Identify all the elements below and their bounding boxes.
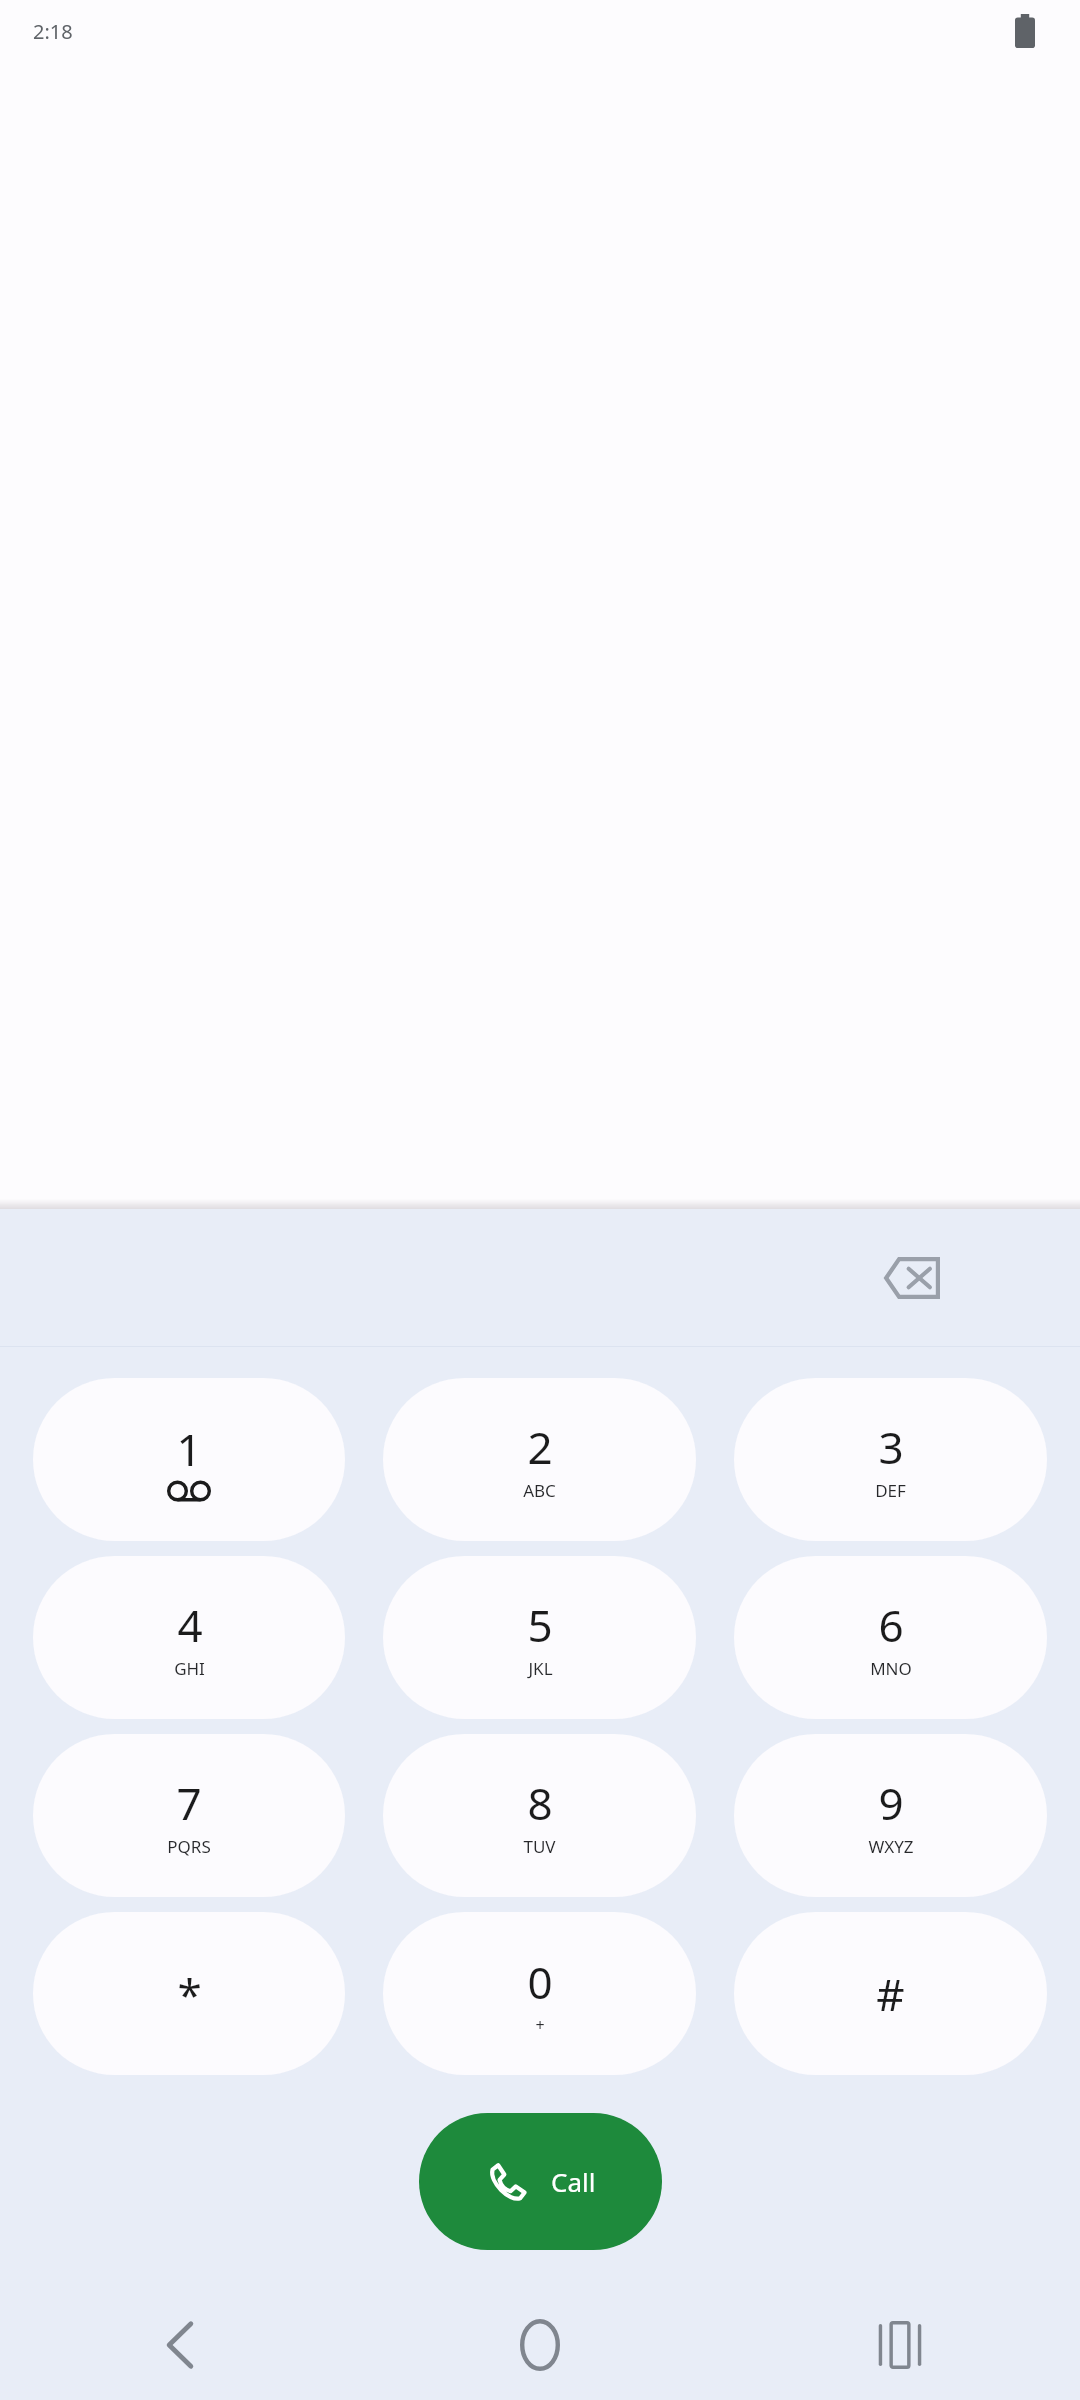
staticText: JKL bbox=[528, 1657, 553, 1680]
staticText: 8 bbox=[527, 1773, 553, 1833]
staticText: ABC bbox=[523, 1479, 556, 1502]
button[interactable]: 2 bbox=[383, 1378, 696, 1541]
staticText: 7 bbox=[176, 1773, 202, 1833]
staticText: PQRS bbox=[167, 1835, 211, 1858]
button[interactable]: Home bbox=[360, 2290, 720, 2400]
button[interactable]: 3 bbox=[734, 1378, 1047, 1541]
button[interactable]: 9 bbox=[734, 1734, 1047, 1897]
staticText: + bbox=[535, 2014, 545, 2036]
button[interactable]: 8 bbox=[383, 1734, 696, 1897]
staticText: 1 bbox=[176, 1419, 202, 1479]
button[interactable]: * bbox=[33, 1912, 345, 2075]
staticText: # bbox=[876, 1964, 905, 2024]
button[interactable]: 1 bbox=[33, 1378, 345, 1541]
button[interactable]: 7 bbox=[33, 1734, 345, 1897]
button[interactable]: 5 bbox=[383, 1556, 696, 1719]
staticText: 2:18 bbox=[33, 18, 73, 45]
staticText: 6 bbox=[878, 1595, 904, 1655]
staticText: 0 bbox=[527, 1952, 553, 2012]
staticText: 3 bbox=[878, 1417, 904, 1477]
staticText: TUV bbox=[523, 1835, 556, 1858]
button[interactable]: 6 bbox=[734, 1556, 1047, 1719]
staticText: MNO bbox=[870, 1657, 912, 1680]
button[interactable]: Recent apps bbox=[720, 2290, 1080, 2400]
button[interactable]: # bbox=[734, 1912, 1047, 2075]
staticText: 9 bbox=[878, 1773, 904, 1833]
button[interactable]: 4 bbox=[33, 1556, 345, 1719]
staticText: 5 bbox=[527, 1595, 553, 1655]
button[interactable]: 0 bbox=[383, 1912, 696, 2075]
staticText: 4 bbox=[177, 1595, 203, 1655]
button[interactable]: Call bbox=[419, 2113, 662, 2250]
staticText: GHI bbox=[174, 1657, 205, 1680]
button[interactable]: Back bbox=[0, 2290, 360, 2400]
staticText: Call bbox=[551, 2164, 596, 2199]
staticText: WXYZ bbox=[868, 1835, 914, 1858]
staticText: DEF bbox=[875, 1479, 906, 1502]
staticText: * bbox=[177, 1964, 202, 2024]
button[interactable]: Backspace bbox=[864, 1230, 960, 1326]
staticText: 2 bbox=[527, 1417, 553, 1477]
